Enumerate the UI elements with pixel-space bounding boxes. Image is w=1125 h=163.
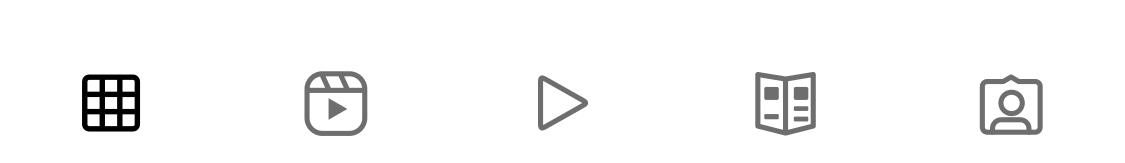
button[interactable]: Reels bbox=[225, 0, 450, 163]
button[interactable]: Profile bbox=[900, 0, 1125, 163]
button[interactable]: News bbox=[675, 0, 900, 163]
button[interactable]: Play bbox=[450, 0, 675, 163]
button[interactable]: Home bbox=[0, 0, 225, 163]
